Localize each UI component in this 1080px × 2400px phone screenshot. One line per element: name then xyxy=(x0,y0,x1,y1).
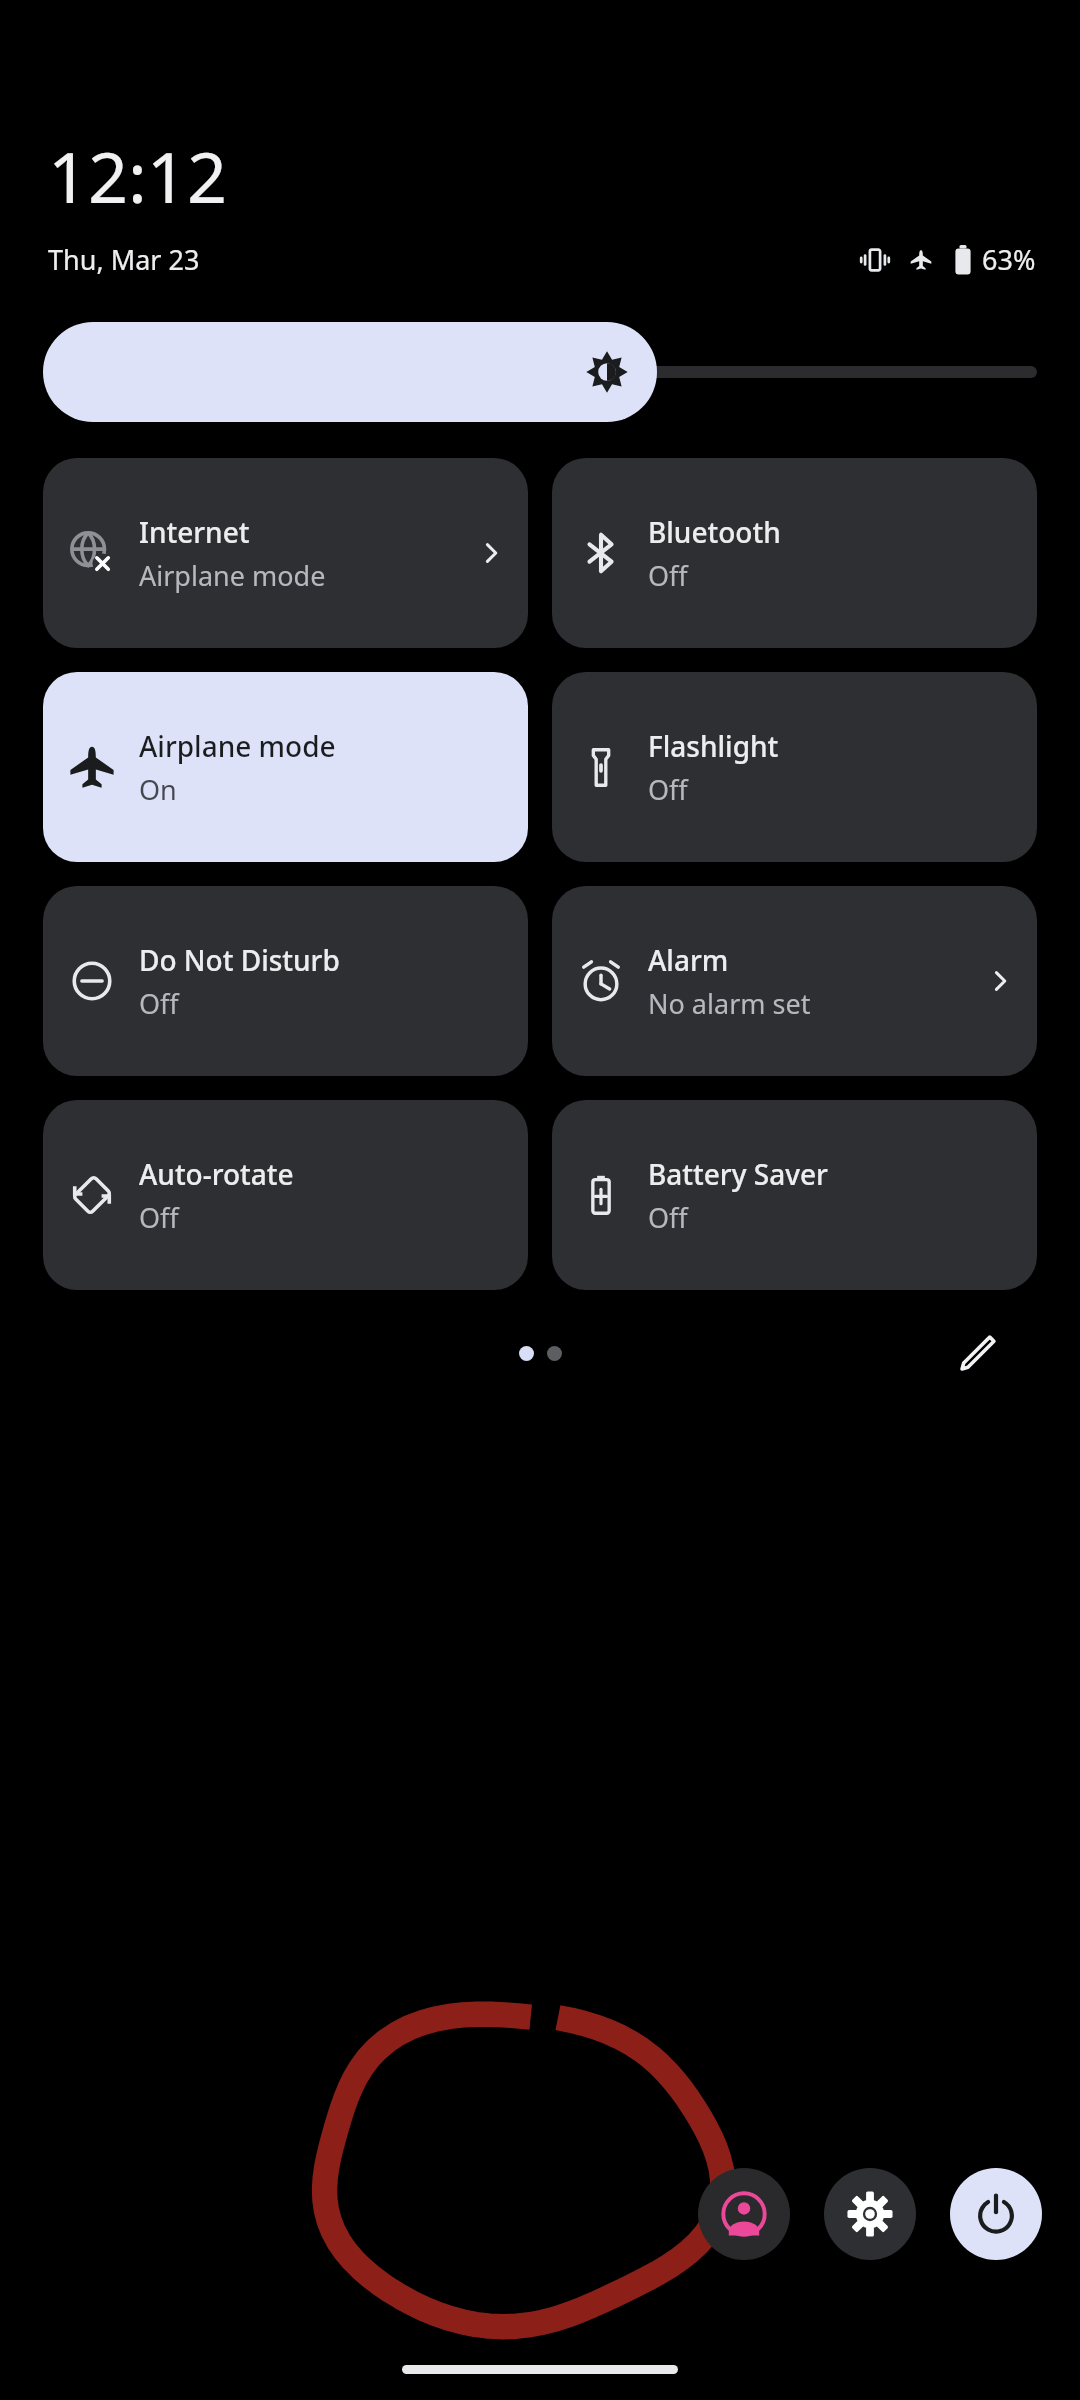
button[interactable]: Bluetooth xyxy=(552,458,1037,648)
staticText: Bluetooth xyxy=(648,513,781,551)
staticText: Battery Saver xyxy=(648,1155,828,1193)
staticText: Airplane mode xyxy=(139,557,326,594)
button[interactable]: Auto-rotate xyxy=(43,1100,528,1290)
staticText: Alarm xyxy=(648,941,729,979)
staticText: Do Not Disturb xyxy=(139,941,340,979)
button[interactable]: Brightness xyxy=(43,322,1037,422)
staticText: 63% xyxy=(982,241,1036,278)
button[interactable]: Internet xyxy=(43,458,528,648)
button[interactable]: Settings xyxy=(824,2168,916,2260)
staticText: Off xyxy=(139,985,179,1022)
button[interactable]: Do Not Disturb xyxy=(43,886,528,1076)
button[interactable]: Alarm xyxy=(552,886,1037,1076)
staticText: Off xyxy=(139,1199,179,1236)
button[interactable]: Battery Saver xyxy=(552,1100,1037,1290)
staticText: Off xyxy=(648,1199,688,1236)
staticText: Airplane mode xyxy=(139,727,336,765)
staticText: Off xyxy=(648,771,688,808)
staticText: Flashlight xyxy=(648,727,779,765)
staticText: No alarm set xyxy=(648,985,811,1022)
staticText: Thu, Mar 23 xyxy=(48,241,200,278)
button[interactable]: Edit tiles xyxy=(948,1323,1008,1383)
staticText: 12:12 xyxy=(48,128,227,223)
button[interactable]: Power xyxy=(950,2168,1042,2260)
staticText: On xyxy=(139,771,177,808)
staticText: Auto-rotate xyxy=(139,1155,294,1193)
staticText: Internet xyxy=(139,513,250,551)
button[interactable]: User profile xyxy=(698,2168,790,2260)
staticText: Off xyxy=(648,557,688,594)
button[interactable]: Flashlight xyxy=(552,672,1037,862)
button[interactable]: Airplane mode xyxy=(43,672,528,862)
